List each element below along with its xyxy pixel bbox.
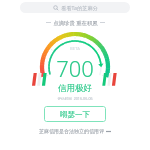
staticText: 评估时间 2016-06-06 [57,96,93,100]
staticText: 嘚瑟一下 [60,110,90,119]
staticText: BETA [70,46,80,52]
button[interactable]: 嘚瑟一下 [44,106,106,122]
staticText: 点滴珍贵 重在积累 [53,19,98,26]
staticText: 看看Ta的芝麻分 [61,4,98,11]
button[interactable]: 搜索 [20,2,130,13]
staticText: 芝麻信用是合法独立的信用评 [39,128,104,134]
staticText: 信用极好 [58,83,92,94]
staticText: 700 [56,53,94,83]
